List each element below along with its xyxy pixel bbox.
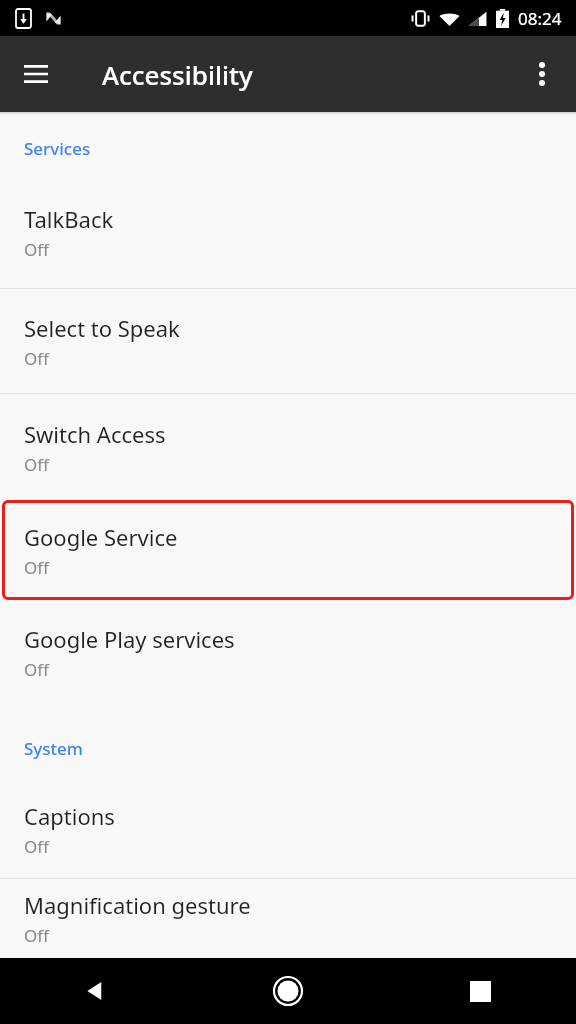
button[interactable]: Google Play services bbox=[0, 600, 576, 705]
staticText: Off bbox=[24, 556, 49, 579]
button[interactable]: Magnification gesture bbox=[0, 879, 576, 958]
button[interactable]: Recent apps bbox=[448, 959, 512, 1023]
button[interactable]: Back bbox=[64, 959, 128, 1023]
staticText: TalkBack bbox=[24, 204, 114, 234]
staticText: Google Play services bbox=[24, 624, 235, 654]
button[interactable]: Google Service bbox=[2, 500, 574, 600]
staticText: System bbox=[24, 737, 83, 760]
button[interactable]: Switch Access bbox=[0, 394, 576, 500]
staticText: Services bbox=[24, 137, 91, 160]
staticText: Captions bbox=[24, 801, 115, 831]
staticText: Off bbox=[24, 924, 49, 947]
button[interactable]: Open navigation menu bbox=[8, 46, 64, 102]
staticText: Magnification gesture bbox=[24, 890, 251, 920]
staticText: Off bbox=[24, 347, 49, 370]
staticText: Google Service bbox=[24, 522, 178, 552]
button[interactable]: Captions bbox=[0, 780, 576, 878]
staticText: Off bbox=[24, 658, 49, 681]
staticText: Off bbox=[24, 835, 49, 858]
staticText: Accessibility bbox=[102, 57, 253, 92]
staticText: Select to Speak bbox=[24, 313, 180, 343]
button[interactable]: TalkBack bbox=[0, 177, 576, 288]
button[interactable]: Select to Speak bbox=[0, 289, 576, 393]
staticText: Off bbox=[24, 238, 49, 261]
button[interactable]: More options bbox=[514, 46, 570, 102]
staticText: Switch Access bbox=[24, 419, 166, 449]
staticText: 08:24 bbox=[518, 7, 562, 30]
button[interactable]: Home bbox=[256, 959, 320, 1023]
staticText: Off bbox=[24, 453, 49, 476]
